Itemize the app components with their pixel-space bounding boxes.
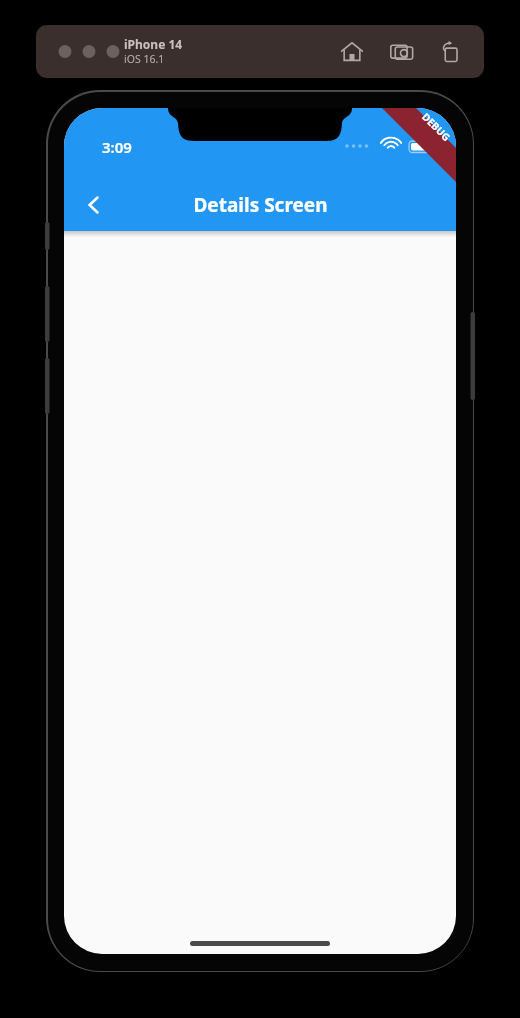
button[interactable]: Rotate [436, 38, 464, 66]
staticText: DEBUG [419, 110, 454, 144]
staticText: Details Screen [193, 192, 328, 218]
staticText: iOS 16.1 [124, 52, 165, 66]
button[interactable]: Screenshot [388, 38, 416, 66]
staticText: iPhone 14 [124, 36, 183, 52]
staticText: 3:09 [102, 137, 132, 157]
button[interactable]: Back [72, 183, 116, 227]
button[interactable]: Home [338, 38, 366, 66]
